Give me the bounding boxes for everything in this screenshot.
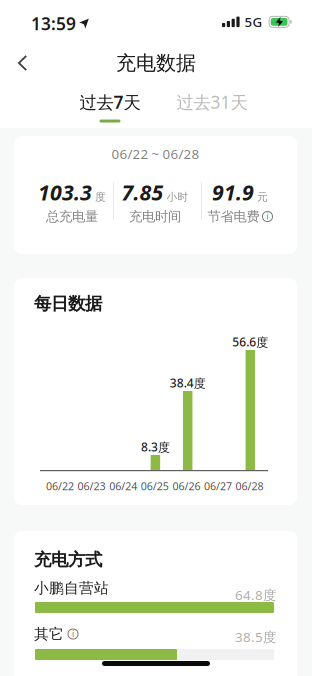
staticText: 总充电量 bbox=[46, 208, 98, 225]
staticText: i bbox=[266, 211, 268, 222]
button[interactable]: Back bbox=[10, 47, 35, 79]
staticText: 节省电费 bbox=[207, 208, 259, 225]
staticText: 06/22 bbox=[46, 479, 74, 493]
staticText: 64.8度 bbox=[235, 586, 276, 604]
staticText: 06/26 bbox=[172, 479, 200, 493]
staticText: 56.6度 bbox=[232, 334, 268, 350]
button[interactable]: 过去31天 bbox=[162, 90, 262, 122]
staticText: 13:59 bbox=[31, 12, 76, 35]
staticText: 38.4度 bbox=[170, 375, 206, 391]
staticText: 小时 bbox=[166, 190, 188, 203]
staticText: 其它 bbox=[34, 625, 64, 643]
button[interactable]: About other charging bbox=[68, 629, 78, 639]
staticText: 06/23 bbox=[78, 479, 106, 493]
staticText: 每日数据 bbox=[34, 293, 102, 314]
staticText: 06/27 bbox=[204, 479, 232, 493]
staticText: 06/24 bbox=[109, 479, 137, 493]
staticText: 过去7天 bbox=[79, 90, 140, 113]
button[interactable]: About saved electricity cost bbox=[262, 211, 272, 221]
staticText: i bbox=[72, 629, 74, 639]
staticText: 充电时间 bbox=[129, 208, 181, 225]
staticText: 5G bbox=[245, 13, 263, 31]
staticText: 91.9 bbox=[212, 178, 254, 206]
staticText: 103.3 bbox=[38, 178, 92, 206]
staticText: 06/28 bbox=[236, 479, 264, 493]
staticText: 过去31天 bbox=[176, 90, 247, 113]
staticText: 8.3度 bbox=[141, 439, 170, 455]
button[interactable]: 过去7天 bbox=[58, 90, 162, 122]
staticText: 元 bbox=[257, 190, 268, 203]
staticText: 小鹏自营站 bbox=[34, 579, 109, 597]
staticText: 充电方式 bbox=[34, 549, 102, 570]
staticText: 7.85 bbox=[121, 178, 163, 206]
staticText: 充电数据 bbox=[116, 51, 196, 75]
staticText: 38.5度 bbox=[235, 628, 276, 646]
staticText: 06/22 ~ 06/28 bbox=[111, 145, 199, 163]
staticText: 06/25 bbox=[141, 479, 169, 493]
staticText: 度 bbox=[95, 190, 106, 203]
